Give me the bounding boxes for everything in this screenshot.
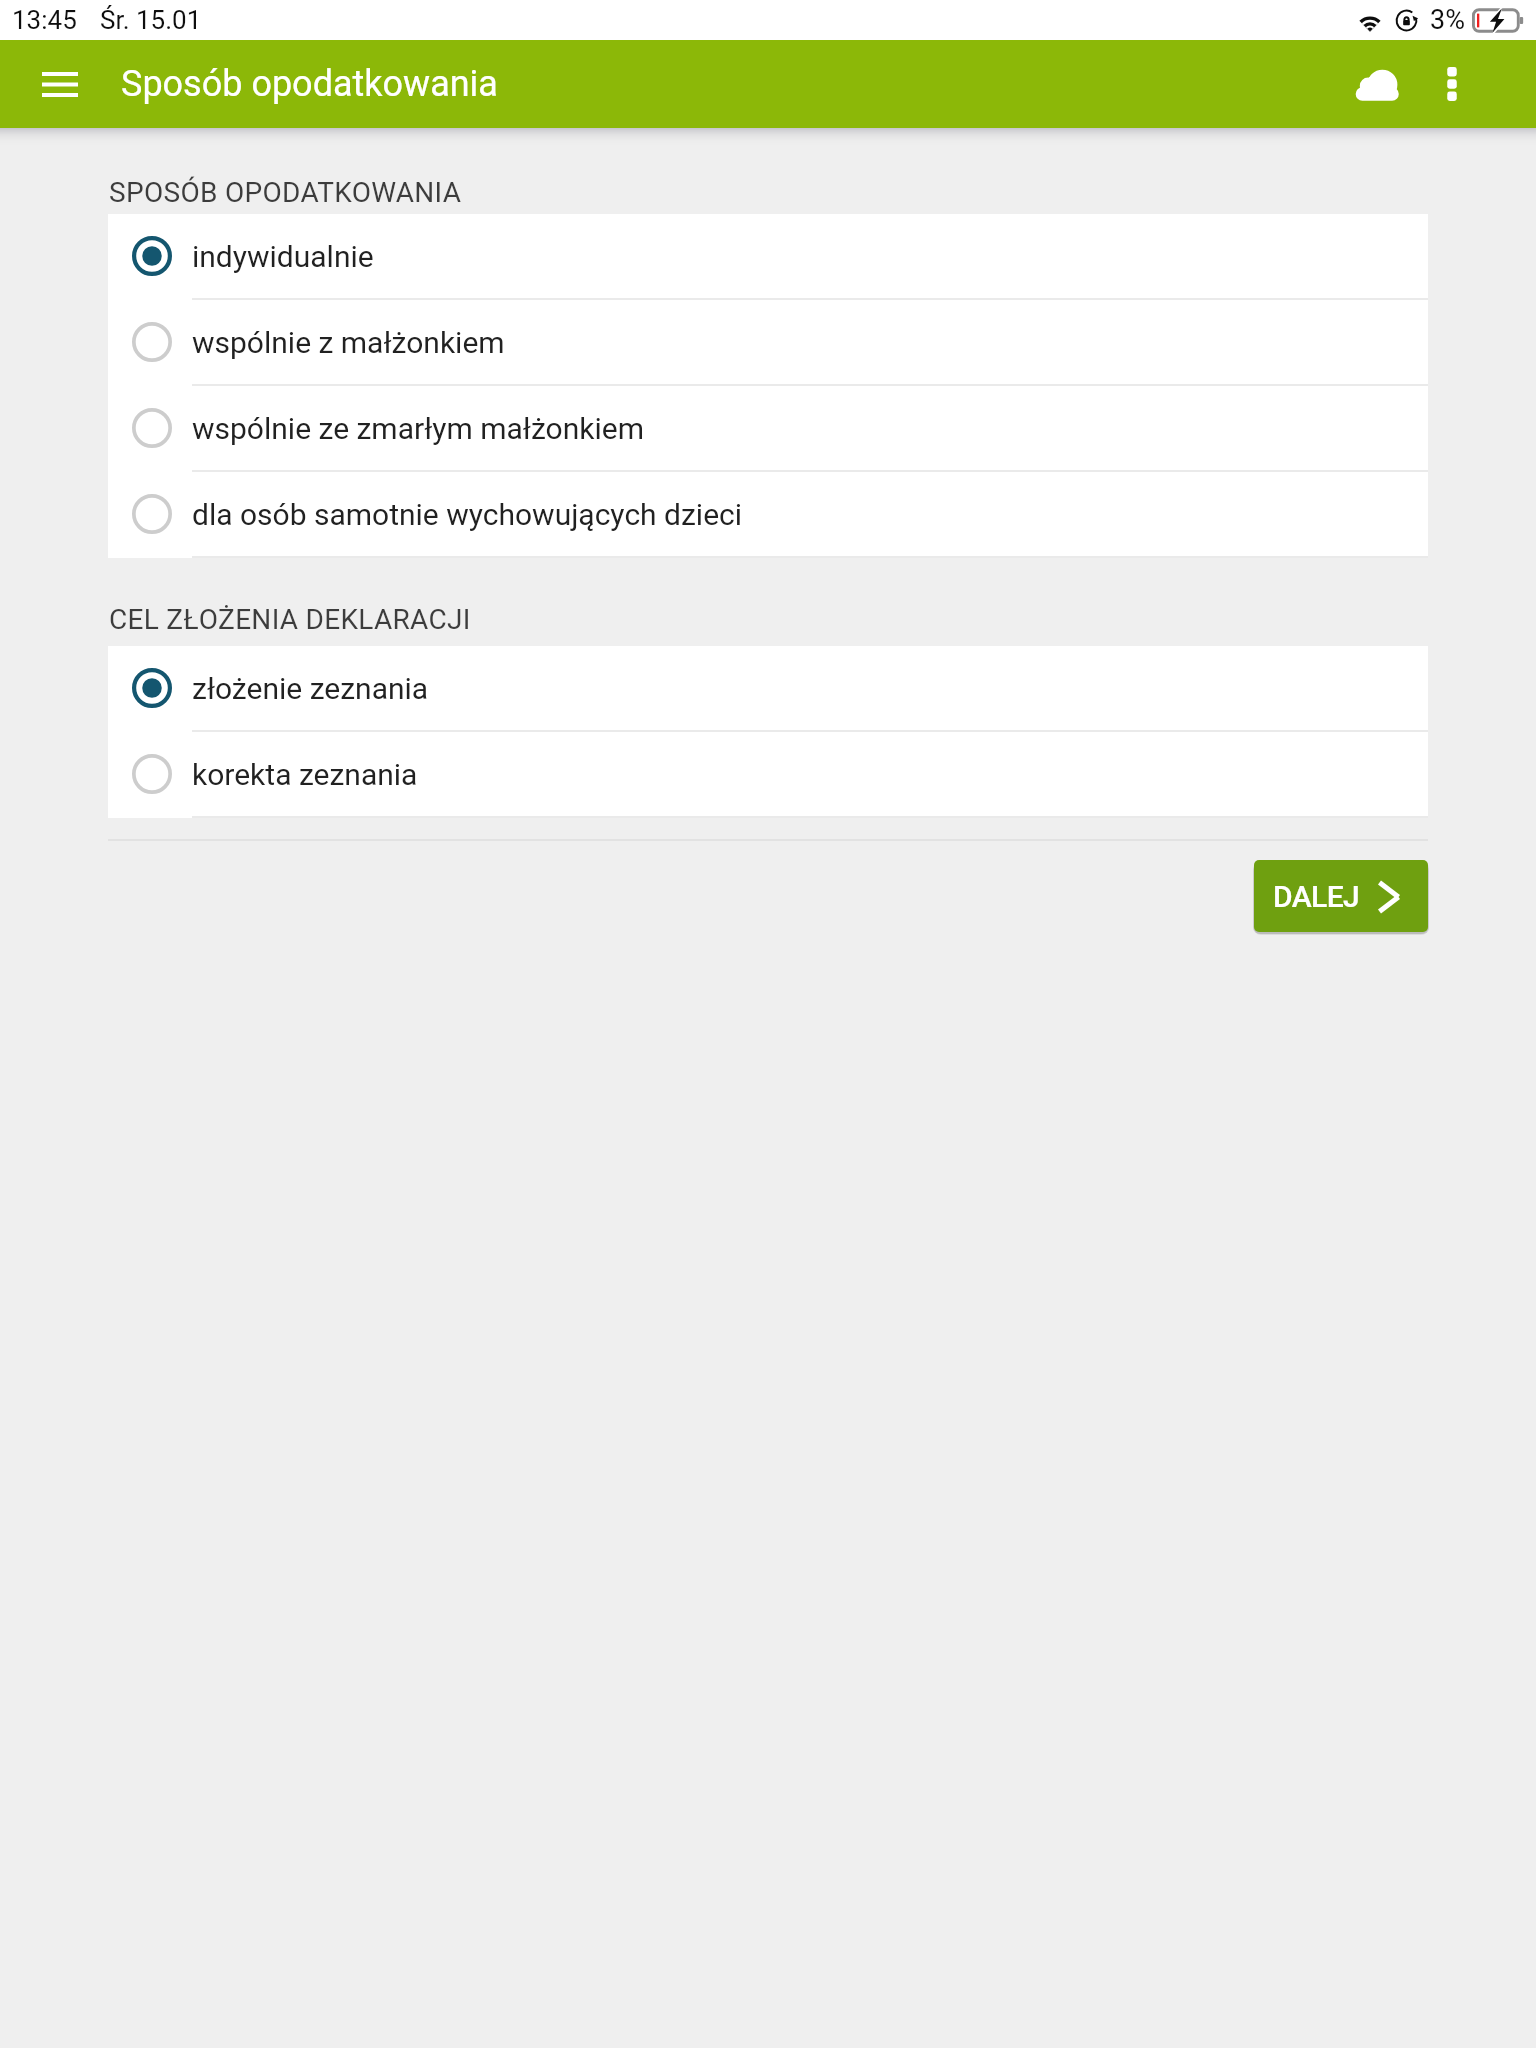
staticText: Sposób opodatkowania xyxy=(121,63,498,105)
staticText: korekta zeznania xyxy=(192,757,418,792)
button[interactable]: Cloud backup xyxy=(1345,40,1408,128)
button[interactable]: wspólnie ze zmarłym małżonkiem xyxy=(108,386,1428,470)
staticText: Śr. 15.01 xyxy=(100,5,202,35)
button[interactable]: korekta zeznania xyxy=(108,732,1428,816)
staticText: wspólnie z małżonkiem xyxy=(192,325,505,360)
button[interactable]: wspólnie z małżonkiem xyxy=(108,300,1428,384)
staticText: 13:45 xyxy=(12,5,77,35)
button[interactable]: More options xyxy=(1408,40,1496,128)
staticText: CEL ZŁOŻENIA DEKLARACJI xyxy=(109,603,471,636)
button[interactable]: DALEJ xyxy=(1254,860,1428,932)
button[interactable]: dla osób samotnie wychowujących dzieci xyxy=(108,472,1428,556)
button[interactable]: Open navigation drawer xyxy=(0,40,120,128)
button[interactable]: indywidualnie xyxy=(108,214,1428,298)
staticText: SPOSÓB OPODATKOWANIA xyxy=(109,176,462,209)
staticText: 3% xyxy=(1430,4,1465,36)
staticText: dla osób samotnie wychowujących dzieci xyxy=(192,497,743,532)
staticText: wspólnie ze zmarłym małżonkiem xyxy=(192,411,645,446)
button[interactable]: złożenie zeznania xyxy=(108,646,1428,730)
staticText: indywidualnie xyxy=(192,239,374,274)
staticText: złożenie zeznania xyxy=(192,671,429,706)
staticText: DALEJ xyxy=(1273,879,1360,914)
